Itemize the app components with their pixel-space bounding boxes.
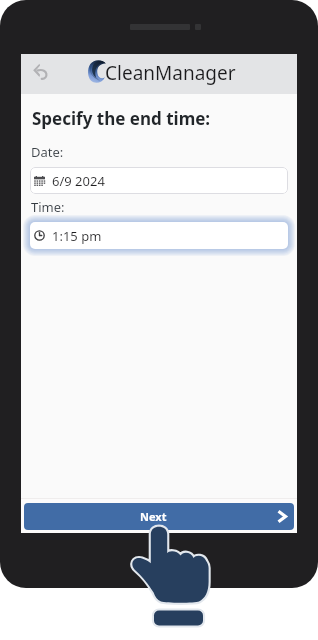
button[interactable]: 6/9 2024 [30, 167, 288, 194]
staticText: Date: [31, 143, 64, 161]
staticText: Next [140, 509, 167, 524]
staticText: 6/9 2024 [52, 172, 105, 190]
button[interactable]: Next [24, 503, 294, 530]
button[interactable]: Back [21, 54, 61, 94]
button[interactable]: 1:15 pm [30, 222, 288, 249]
staticText: Specify the end time: [32, 107, 211, 130]
staticText: CleanManager [105, 60, 236, 86]
staticText: 1:15 pm [52, 227, 102, 245]
staticText: Time: [31, 198, 65, 216]
